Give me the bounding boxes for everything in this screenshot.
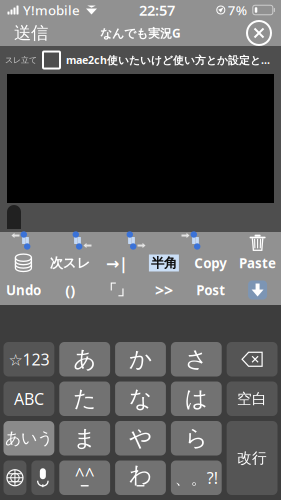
button[interactable]: New thread bbox=[43, 51, 60, 68]
staticText: mae2ch使いたいけど使い方とか設定とかわかり bbox=[66, 53, 270, 67]
button[interactable]: あいう bbox=[3, 421, 54, 455]
button[interactable]: 空白 bbox=[227, 381, 277, 416]
button[interactable]: は bbox=[171, 381, 222, 416]
staticText: 半角 bbox=[151, 255, 177, 271]
button[interactable]: ま bbox=[59, 421, 110, 455]
staticText: 7% bbox=[225, 1, 247, 19]
staticText: あ bbox=[73, 345, 96, 373]
button[interactable]: Paste bbox=[234, 252, 281, 274]
staticText: Y!mobile bbox=[20, 1, 80, 19]
button[interactable]: ^^ bbox=[59, 460, 110, 495]
staticText: 改行 bbox=[237, 449, 267, 467]
button[interactable]: か bbox=[115, 342, 166, 376]
button[interactable]: 送信 bbox=[6, 18, 56, 48]
button[interactable]: わ bbox=[115, 460, 166, 495]
staticText: あいう bbox=[5, 428, 53, 448]
staticText: わ bbox=[129, 461, 152, 489]
button[interactable]: Delete bbox=[227, 342, 277, 376]
staticText: 送信 bbox=[14, 22, 48, 44]
staticText: なんでも実況G bbox=[100, 25, 181, 41]
staticText: Undo bbox=[6, 281, 41, 299]
button[interactable]: ら bbox=[171, 421, 222, 455]
staticText: Paste bbox=[239, 254, 276, 272]
button[interactable]: ABC bbox=[3, 381, 54, 416]
button[interactable]: Dictate bbox=[31, 460, 54, 495]
button[interactable]: Post bbox=[187, 279, 234, 301]
staticText: () bbox=[65, 280, 75, 300]
staticText: ^^ bbox=[75, 463, 95, 486]
staticText: さ bbox=[185, 345, 208, 373]
button[interactable]: () bbox=[47, 279, 94, 301]
staticText: ABC bbox=[14, 388, 44, 409]
staticText: 「」 bbox=[102, 281, 132, 299]
button[interactable]: Undo bbox=[0, 279, 47, 301]
staticText: や bbox=[129, 424, 152, 452]
staticText: Post bbox=[196, 281, 225, 299]
button[interactable]: あ bbox=[59, 342, 110, 376]
staticText: Copy bbox=[194, 254, 227, 272]
staticText: スレ立て bbox=[5, 55, 37, 65]
staticText: →| bbox=[106, 252, 128, 274]
button[interactable]: Saved threads bbox=[0, 252, 47, 274]
staticText: 空白 bbox=[237, 390, 267, 408]
staticText: ☆123 bbox=[8, 349, 49, 370]
button[interactable]: ☆123 bbox=[3, 342, 54, 376]
staticText: な bbox=[129, 385, 152, 413]
staticText bbox=[247, 0, 253, 25]
staticText: 次スレ bbox=[50, 255, 91, 271]
button[interactable]: >> bbox=[140, 279, 187, 301]
staticText: は bbox=[185, 385, 208, 413]
button[interactable]: や bbox=[115, 421, 166, 455]
button[interactable]: Copy bbox=[187, 252, 234, 274]
staticText: た bbox=[73, 385, 96, 413]
button[interactable]: な bbox=[115, 381, 166, 416]
button[interactable]: 改行 bbox=[227, 421, 277, 495]
staticText: ま bbox=[73, 424, 96, 452]
staticText: >> bbox=[155, 279, 173, 301]
staticText: 22:57 bbox=[139, 0, 175, 20]
staticText: ら bbox=[185, 424, 208, 452]
button[interactable]: 、。?! bbox=[171, 460, 222, 495]
button[interactable]: →| bbox=[94, 252, 140, 274]
button[interactable]: さ bbox=[171, 342, 222, 376]
button[interactable]: 「」 bbox=[94, 279, 140, 301]
button[interactable]: Download bbox=[234, 279, 281, 301]
staticText: か bbox=[129, 345, 152, 373]
staticText: 、。?! bbox=[175, 467, 218, 488]
button[interactable]: 次スレ bbox=[47, 252, 94, 274]
button[interactable]: た bbox=[59, 381, 110, 416]
button[interactable]: Close bbox=[243, 21, 275, 45]
button[interactable]: Next keyboard bbox=[3, 460, 26, 495]
button[interactable]: 半角 bbox=[140, 252, 187, 274]
